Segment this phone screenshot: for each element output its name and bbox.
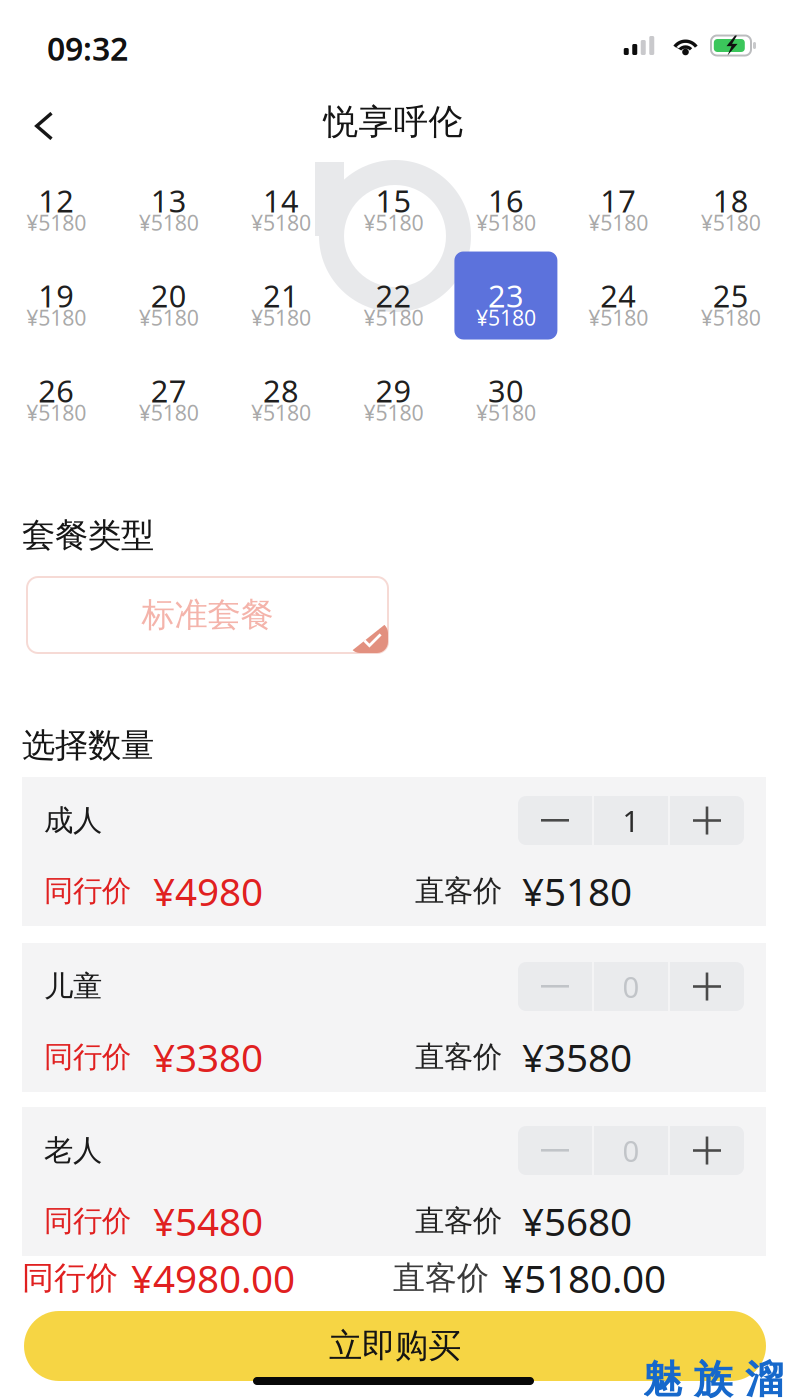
button[interactable]: Decrease	[518, 796, 592, 845]
button[interactable]: 16	[454, 178, 557, 267]
staticText: 13	[151, 180, 187, 221]
button[interactable]: 23	[454, 273, 557, 362]
staticText: 魅 族 溜	[643, 1356, 784, 1400]
staticText: ¥5180	[26, 303, 86, 332]
staticText: ¥5180	[701, 208, 761, 237]
button[interactable]: 21	[230, 273, 333, 362]
staticText: ¥5180.00	[502, 1252, 666, 1304]
button[interactable]: 30	[454, 368, 557, 457]
staticText: 18	[713, 180, 749, 221]
staticText: ¥5180	[476, 208, 536, 237]
staticText: 23	[488, 275, 524, 316]
staticText: 12	[38, 180, 74, 221]
staticText: ¥5180	[363, 398, 423, 427]
staticText: 27	[151, 370, 187, 411]
button[interactable]: 12	[5, 178, 108, 267]
staticText: 24	[600, 275, 636, 316]
staticText: 21	[263, 275, 299, 316]
staticText: 同行价	[44, 1203, 131, 1239]
button[interactable]: 20	[117, 273, 220, 362]
button[interactable]: 28	[230, 368, 333, 457]
staticText: 25	[713, 275, 749, 316]
staticText: 同行价	[44, 873, 131, 909]
staticText: ¥5180	[476, 398, 536, 427]
staticText: ¥5180	[251, 398, 311, 427]
staticText: 标准套餐	[141, 594, 273, 635]
staticText: 选择数量	[22, 725, 154, 766]
staticText: ¥5180	[26, 208, 86, 237]
staticText: ¥5180	[251, 208, 311, 237]
staticText: ¥5480	[153, 1195, 263, 1247]
staticText: ¥5180	[588, 208, 648, 237]
staticText: ¥5180	[701, 303, 761, 332]
staticText: ¥5680	[522, 1195, 632, 1247]
button[interactable]: 29	[342, 368, 445, 457]
staticText: 17	[600, 180, 636, 221]
staticText: ¥4980	[153, 865, 263, 917]
staticText: 套餐类型	[22, 515, 154, 556]
button[interactable]: 19	[5, 273, 108, 362]
staticText: ¥5180	[363, 208, 423, 237]
staticText: 16	[488, 180, 524, 221]
staticText: ¥5180	[139, 303, 199, 332]
staticText: 直客价	[415, 873, 502, 909]
staticText: 直客价	[415, 1203, 502, 1239]
staticText: 22	[375, 275, 411, 316]
staticText: 09:32	[47, 27, 128, 69]
staticText: ¥5180	[139, 208, 199, 237]
button[interactable]: Back	[13, 95, 75, 157]
button[interactable]: 25	[679, 273, 782, 362]
staticText: 1	[622, 801, 639, 840]
staticText: ¥4980.00	[131, 1252, 295, 1304]
button[interactable]: 13	[117, 178, 220, 267]
staticText: 悦享呼伦	[323, 101, 463, 143]
staticText: 同行价	[44, 1039, 131, 1075]
button[interactable]: 14	[230, 178, 333, 267]
staticText: 立即购买	[329, 1325, 461, 1366]
button[interactable]: Increase	[670, 962, 744, 1011]
staticText: 26	[38, 370, 74, 411]
staticText: ¥5180	[139, 398, 199, 427]
staticText: 20	[151, 275, 187, 316]
button[interactable]: Decrease	[518, 962, 592, 1011]
staticText: 0	[622, 1131, 639, 1170]
button[interactable]: 22	[342, 273, 445, 362]
button[interactable]: 17	[567, 178, 670, 267]
staticText: www.mz6.net	[636, 1386, 787, 1400]
button[interactable]: 27	[117, 368, 220, 457]
staticText: ¥5180	[476, 303, 536, 332]
staticText: 28	[263, 370, 299, 411]
button[interactable]: 15	[342, 178, 445, 267]
staticText: 30	[488, 370, 524, 411]
staticText: ¥5180	[26, 398, 86, 427]
staticText: ¥5180	[522, 865, 632, 917]
staticText: 0	[622, 967, 639, 1006]
staticText: 15	[375, 180, 411, 221]
button[interactable]: 立即购买	[24, 1311, 766, 1381]
staticText: 成人	[44, 802, 102, 838]
staticText: 同行价	[22, 1258, 118, 1298]
button[interactable]: Increase	[670, 796, 744, 845]
staticText: 19	[38, 275, 74, 316]
staticText: 直客价	[415, 1039, 502, 1075]
staticText: 老人	[44, 1132, 102, 1168]
button[interactable]: 标准套餐	[27, 577, 388, 653]
button[interactable]: Increase	[670, 1126, 744, 1175]
button[interactable]: 24	[567, 273, 670, 362]
staticText: ¥5180	[251, 303, 311, 332]
staticText: ¥3580	[522, 1031, 632, 1083]
staticText: ¥5180	[363, 303, 423, 332]
staticText: 儿童	[44, 968, 102, 1004]
staticText: 14	[263, 180, 299, 221]
staticText: 29	[375, 370, 411, 411]
staticText: ¥5180	[588, 303, 648, 332]
button[interactable]: 26	[5, 368, 108, 457]
staticText: 直客价	[393, 1258, 489, 1298]
staticText: ¥3380	[153, 1031, 263, 1083]
button[interactable]: Decrease	[518, 1126, 592, 1175]
button[interactable]: 18	[679, 178, 782, 267]
